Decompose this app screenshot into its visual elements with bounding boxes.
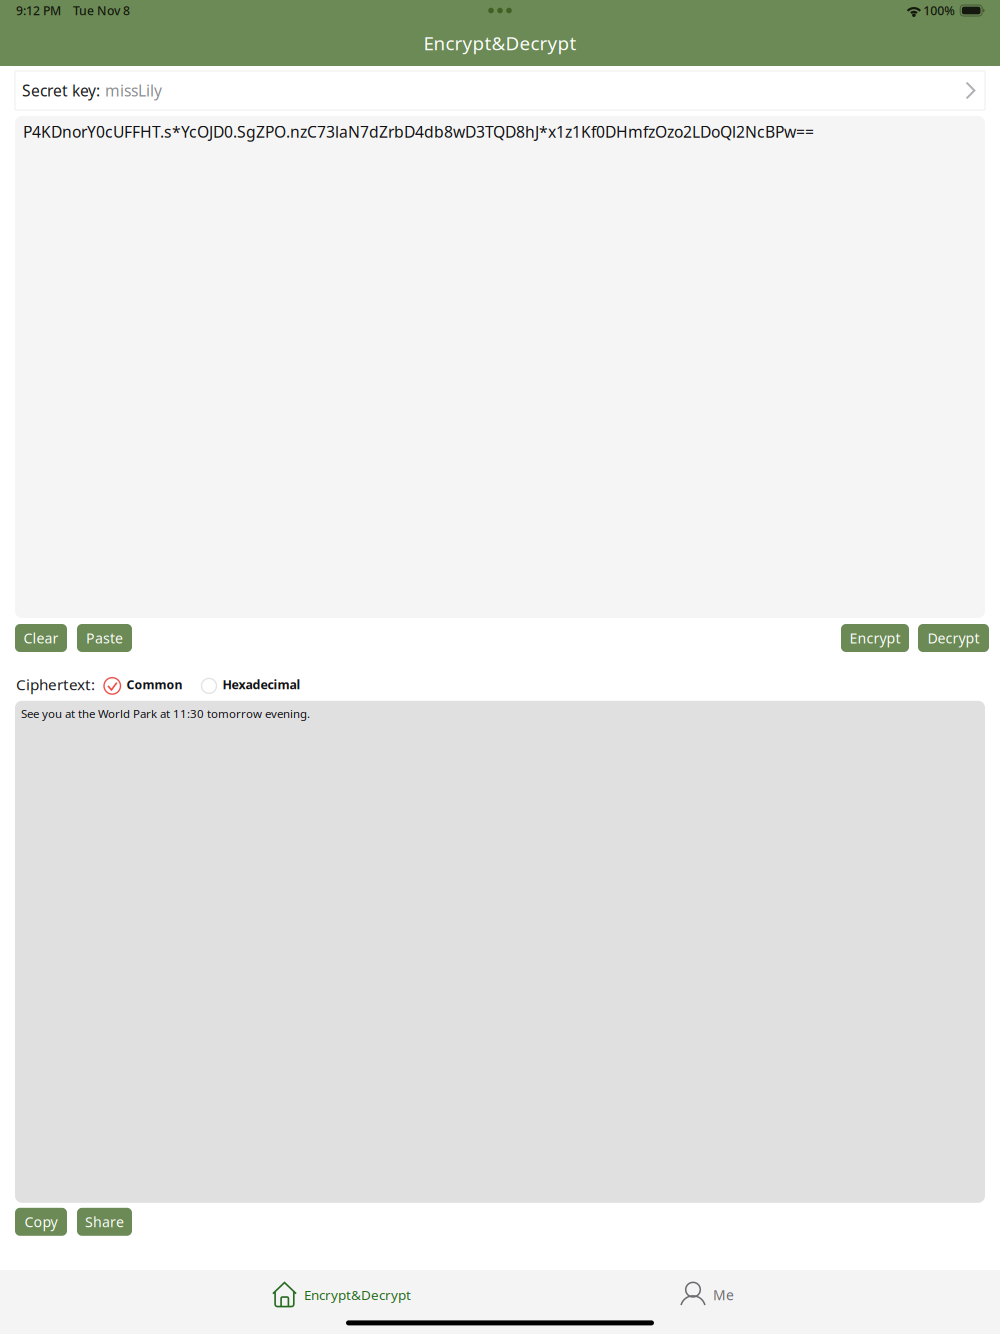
staticText: Hexadecimal — [222, 676, 300, 693]
staticText: Decrypt — [927, 628, 979, 648]
button[interactable]: Share — [77, 1208, 132, 1236]
staticText: Clear — [23, 628, 58, 648]
staticText: See you at the World Park at 11:30 tomor… — [21, 706, 310, 721]
staticText: Ciphertext: — [16, 674, 95, 695]
button[interactable]: Copy — [15, 1208, 67, 1236]
staticText: Me — [713, 1285, 734, 1304]
staticText: 9:12 PM — [16, 2, 61, 19]
button[interactable]: Common — [95, 675, 182, 694]
staticText: Paste — [86, 628, 123, 648]
button[interactable]: Hexadecimal — [182, 675, 300, 693]
staticText: Secret key: — [22, 80, 100, 101]
staticText: Tue Nov 8 — [73, 2, 130, 19]
button[interactable]: Me — [681, 1275, 734, 1315]
button[interactable]: Decrypt — [918, 624, 989, 652]
staticText: Copy — [24, 1212, 57, 1231]
button[interactable]: Encrypt — [841, 624, 909, 652]
button[interactable]: Secret key: — [0, 66, 1000, 110]
staticText: Share — [85, 1212, 124, 1231]
staticText: Encrypt&Decrypt — [304, 1286, 411, 1304]
staticText: Encrypt — [849, 628, 900, 648]
staticText: Encrypt&Decrypt — [423, 30, 576, 56]
staticText: Common — [126, 676, 182, 693]
staticText: P4KDnorY0cUFFHT.s*YcOJD0.SgZPO.nzC73laN7… — [23, 121, 814, 142]
button[interactable]: Paste — [77, 624, 132, 652]
button[interactable]: Encrypt&Decrypt — [272, 1275, 411, 1315]
staticText: 100% — [923, 2, 955, 19]
staticText: missLily — [105, 80, 162, 101]
button[interactable]: Clear — [15, 624, 67, 652]
